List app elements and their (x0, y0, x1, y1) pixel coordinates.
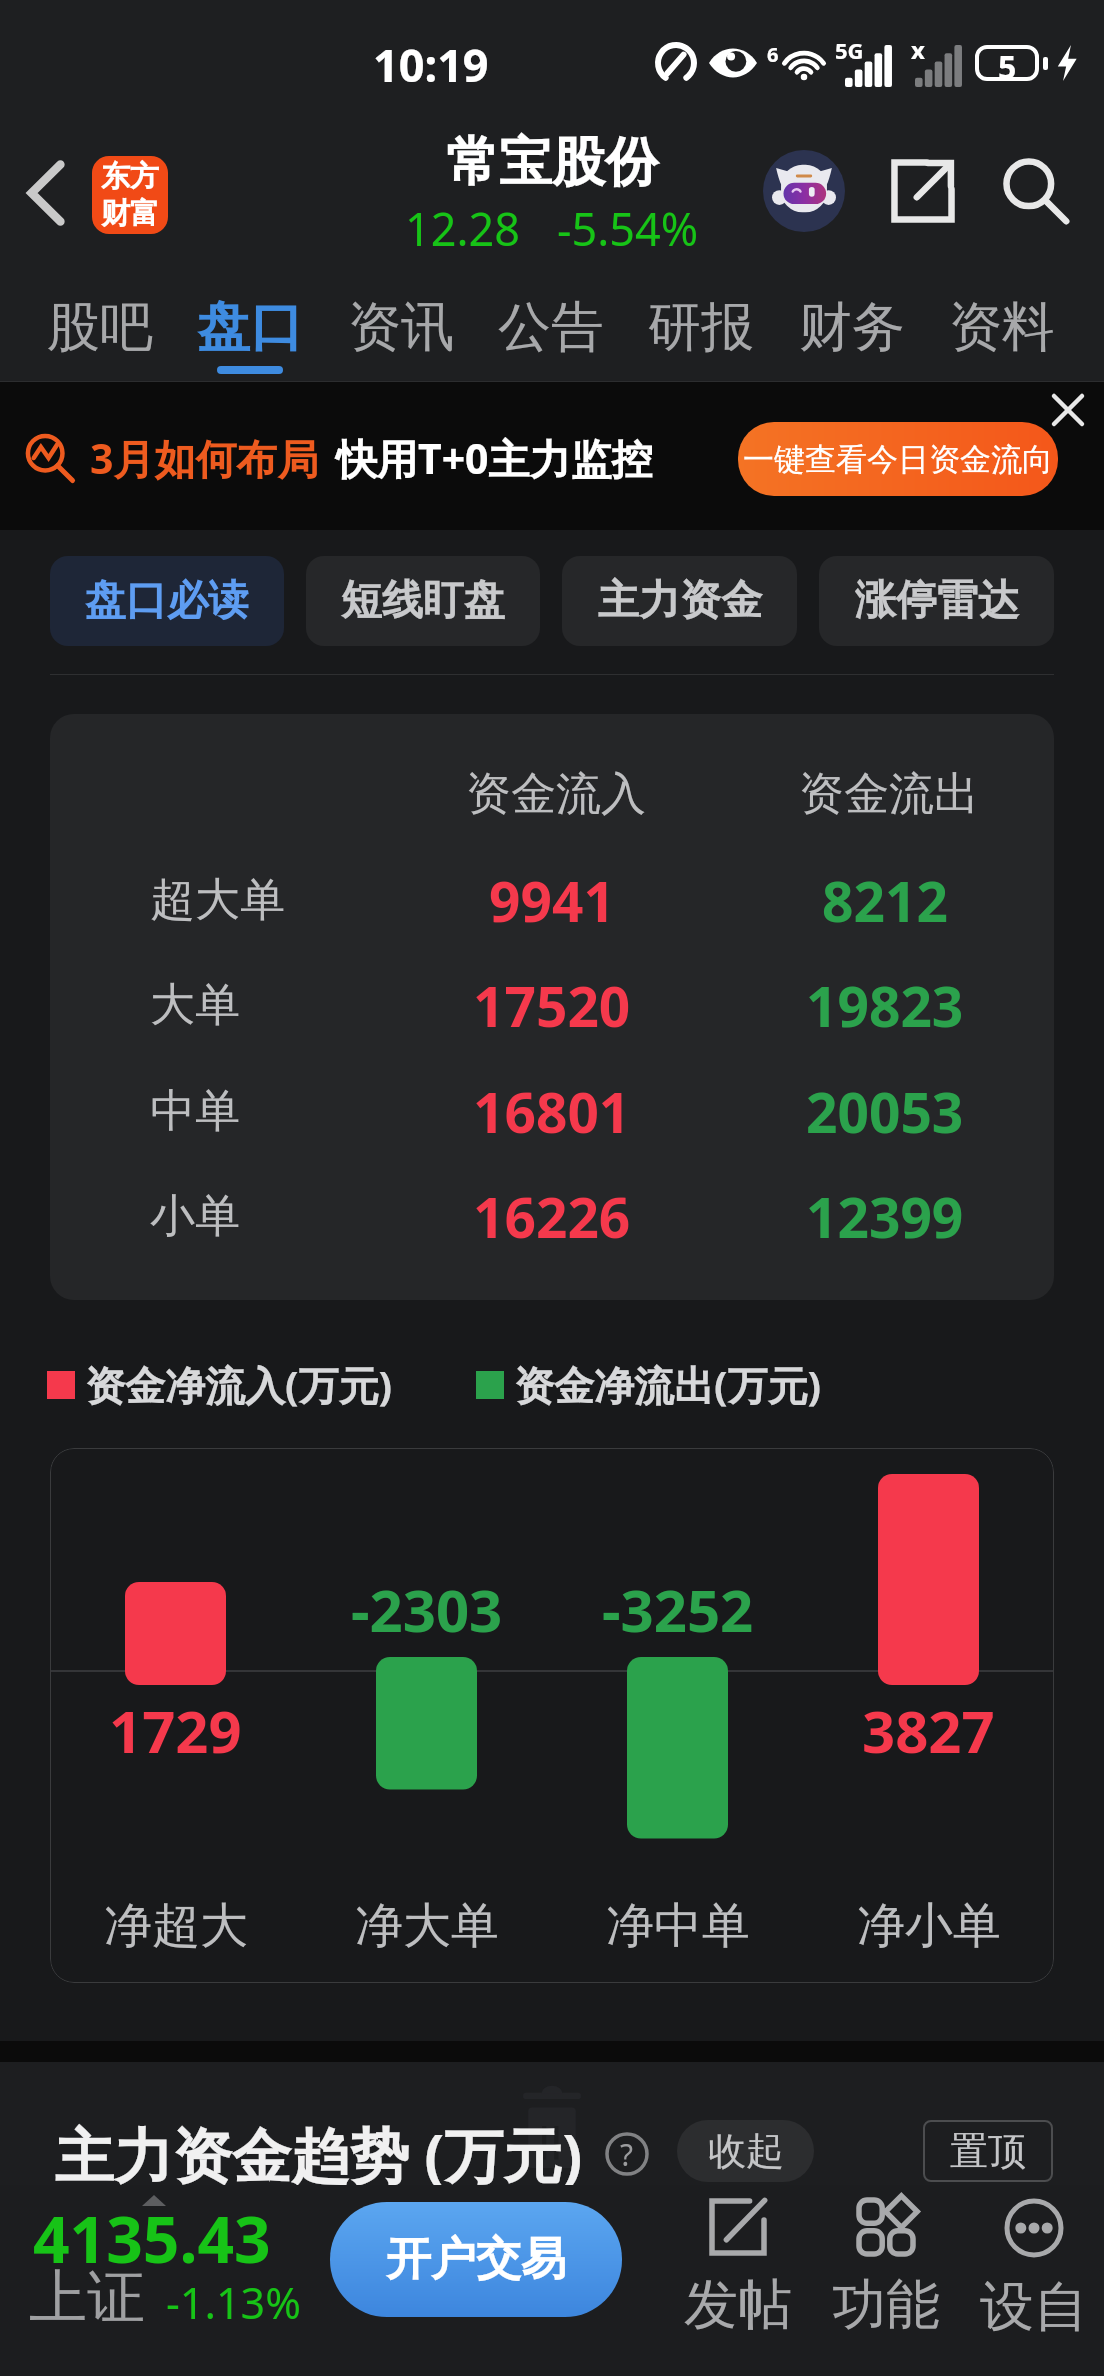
staticText: 5 (998, 45, 1017, 81)
staticText: 设自 (980, 2273, 1088, 2341)
staticText: 1729 (109, 1691, 242, 1761)
staticText: 12.28 (405, 198, 521, 254)
staticText: 资金流入 (466, 766, 646, 823)
button[interactable]: 置顶 (923, 2120, 1053, 2182)
staticText: 财富 (101, 195, 159, 232)
staticText: 常宝股份 (446, 129, 658, 196)
button[interactable]: 财务 (777, 264, 927, 382)
staticText: 东方 (101, 158, 159, 195)
staticText: 16226 (473, 1179, 631, 1254)
staticText: 资金净流出(万元) (514, 1357, 822, 1412)
staticText: 净大单 (355, 1896, 499, 1956)
staticText: 盘口 (197, 294, 303, 361)
staticText: 快用T+0主力监控 (336, 430, 653, 486)
staticText: 资金流出 (799, 766, 979, 823)
staticText: -3252 (602, 1570, 754, 1640)
staticText: 4135.43 (33, 2195, 271, 2282)
staticText: 净小单 (857, 1896, 1001, 1956)
staticText: -5.54% (557, 198, 699, 254)
button[interactable]: AI assistant (756, 143, 852, 239)
staticText: 研报 (648, 294, 754, 361)
button[interactable]: Back (4, 151, 88, 235)
staticText: 一键查看今日资金流向 (743, 440, 1053, 479)
staticText: 8212 (822, 863, 948, 938)
staticText: 股吧 (47, 294, 153, 361)
button[interactable]: 盘口 (175, 264, 325, 382)
staticText: 主力资金 (598, 575, 762, 627)
button[interactable]: 主力资金 (562, 556, 797, 646)
staticText: 3827 (862, 1691, 995, 1761)
staticText: 中单 (150, 1083, 240, 1140)
staticText: 16801 (473, 1074, 631, 1149)
staticText: 涨停雷达 (855, 575, 1019, 627)
staticText: 上证 (29, 2261, 145, 2334)
staticText: 10:19 (373, 34, 489, 95)
staticText: 20053 (806, 1074, 964, 1149)
button[interactable]: 股吧 (25, 264, 175, 382)
button[interactable]: 一键查看今日资金流向 (738, 422, 1058, 496)
staticText: 功能 (832, 2271, 940, 2339)
staticText: -2303 (351, 1570, 503, 1640)
staticText: 净中单 (606, 1896, 750, 1956)
button[interactable]: Help (605, 2132, 649, 2176)
staticText: 净超大 (104, 1896, 248, 1956)
staticText: ? (620, 2134, 634, 2175)
button[interactable]: Search (988, 143, 1084, 239)
button[interactable]: 开户交易 (330, 2202, 622, 2317)
button[interactable]: 设自 (960, 2190, 1104, 2350)
staticText: 资讯 (348, 294, 454, 361)
button[interactable]: 资料 (927, 264, 1077, 382)
staticText: 小单 (150, 1188, 240, 1245)
staticText: 6 (767, 41, 779, 68)
button[interactable]: Close (1040, 382, 1096, 438)
staticText: 主力资金趋势 (万元) (55, 2114, 583, 2195)
staticText: 17520 (473, 968, 631, 1043)
button[interactable]: 盘口必读 (50, 556, 284, 646)
staticText: 短线盯盘 (341, 575, 505, 627)
staticText: 开户交易 (386, 2231, 566, 2288)
staticText: 公告 (498, 294, 604, 361)
button[interactable]: 研报 (626, 264, 776, 382)
staticText: 9941 (489, 863, 615, 938)
staticText: 资金净流入(万元) (85, 1357, 393, 1412)
staticText: 置顶 (950, 2127, 1026, 2175)
button[interactable]: East Money (92, 156, 168, 234)
button[interactable]: 公告 (476, 264, 626, 382)
staticText: 3月如何布局 (90, 430, 319, 486)
button[interactable]: Share (875, 143, 971, 239)
staticText: x (911, 33, 925, 66)
button[interactable]: 发帖 (664, 2190, 812, 2350)
staticText: 财务 (799, 294, 905, 361)
button[interactable]: 短线盯盘 (306, 556, 540, 646)
staticText: -1.13% (166, 2273, 301, 2332)
staticText: 资料 (949, 294, 1055, 361)
staticText: 发帖 (684, 2271, 792, 2339)
staticText: 大单 (150, 977, 240, 1034)
staticText: 盘口必读 (85, 575, 249, 627)
button[interactable]: 3月如何布局 (0, 382, 1104, 530)
button[interactable]: 涨停雷达 (819, 556, 1054, 646)
staticText: 收起 (708, 2127, 784, 2175)
staticText: 19823 (806, 968, 964, 1043)
button[interactable]: 收起 (677, 2120, 814, 2182)
staticText: 超大单 (150, 872, 285, 929)
staticText: 5G (835, 35, 864, 65)
button[interactable]: 资讯 (326, 264, 476, 382)
staticText: 12399 (806, 1179, 964, 1254)
button[interactable]: 功能 (812, 2190, 960, 2350)
